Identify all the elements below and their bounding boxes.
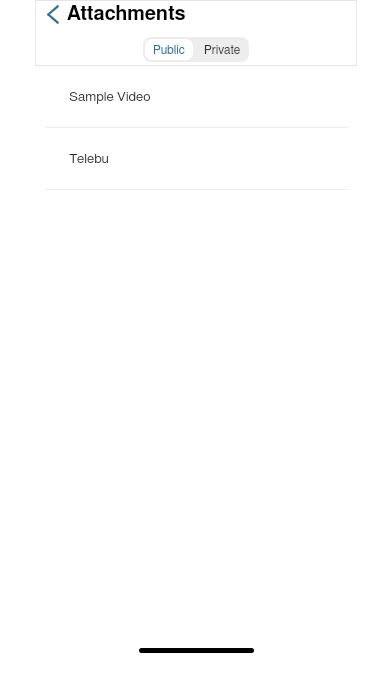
staticText: Telebu: [69, 152, 109, 166]
staticText: Attachments: [67, 4, 186, 24]
staticText: Sample Video: [69, 90, 151, 104]
button[interactable]: Telebu: [0, 128, 392, 190]
button[interactable]: Private: [195, 37, 249, 62]
button[interactable]: Back: [42, 3, 64, 25]
staticText: Public: [153, 44, 185, 56]
button[interactable]: Public: [145, 39, 193, 60]
staticText: Private: [204, 44, 241, 56]
button[interactable]: Sample Video: [0, 66, 392, 128]
